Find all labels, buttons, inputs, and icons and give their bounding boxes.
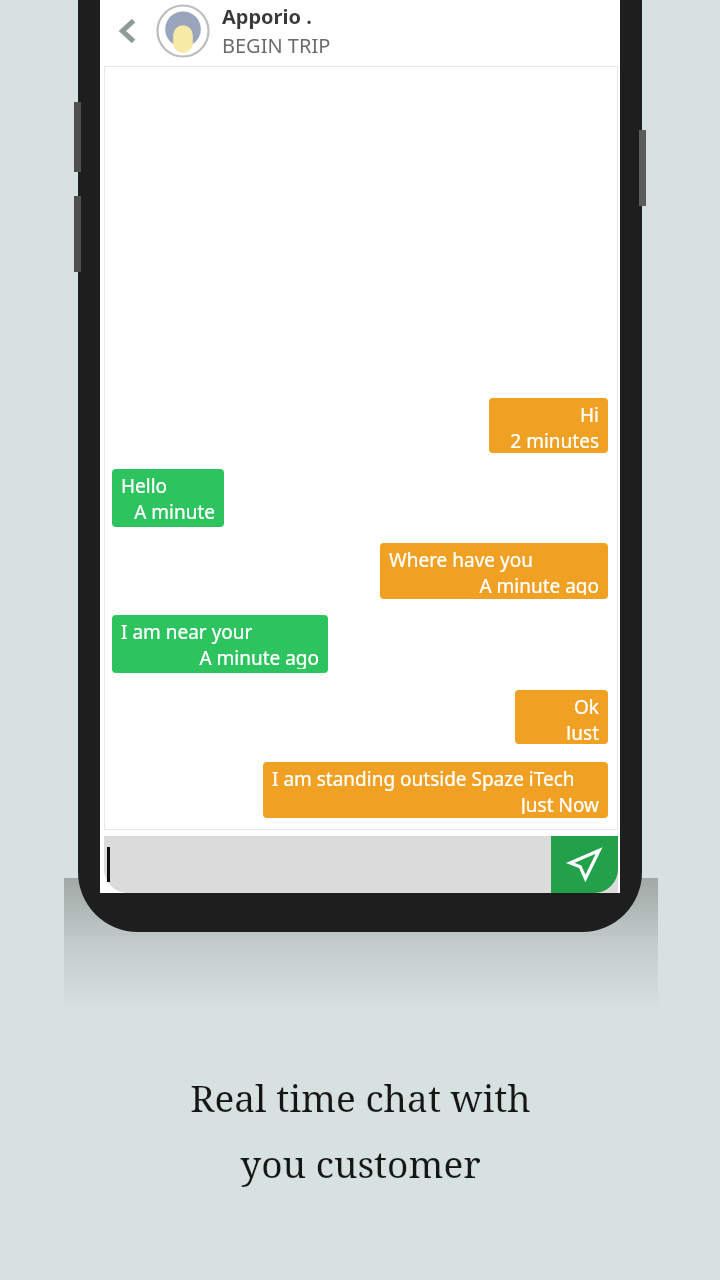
staticText: A minute ago — [121, 499, 215, 523]
button[interactable] — [104, 836, 618, 893]
staticText: Ok — [524, 694, 599, 720]
staticText: Where have you reached? — [389, 547, 599, 573]
staticText: 2 minutes ago — [498, 428, 599, 449]
staticText: BEGIN TRIP — [222, 32, 331, 59]
staticText: A minute ago — [389, 573, 599, 595]
button[interactable]: I am near your location. — [112, 615, 328, 673]
staticText: Hi — [498, 402, 599, 428]
button[interactable]: Send — [551, 836, 618, 893]
staticText: Hello — [121, 473, 215, 499]
button[interactable]: Back — [100, 0, 156, 62]
button[interactable]: Hi — [489, 398, 608, 453]
staticText: I am standing outside Spaze iTech Park — [272, 766, 599, 792]
button[interactable]: I am standing outside Spaze iTech Park — [263, 762, 608, 818]
staticText: Real time chat with — [190, 1072, 531, 1122]
staticText: Apporio . — [222, 3, 312, 30]
staticText: I am near your location. — [121, 619, 319, 645]
staticText: Just Now — [272, 792, 599, 814]
staticText: Just Now — [524, 720, 599, 740]
button[interactable]: Ok — [515, 690, 608, 744]
button[interactable]: Hello — [112, 469, 224, 527]
staticText: you customer — [240, 1138, 481, 1188]
button[interactable]: Where have you reached? — [380, 543, 608, 599]
staticText: A minute ago — [121, 645, 319, 669]
